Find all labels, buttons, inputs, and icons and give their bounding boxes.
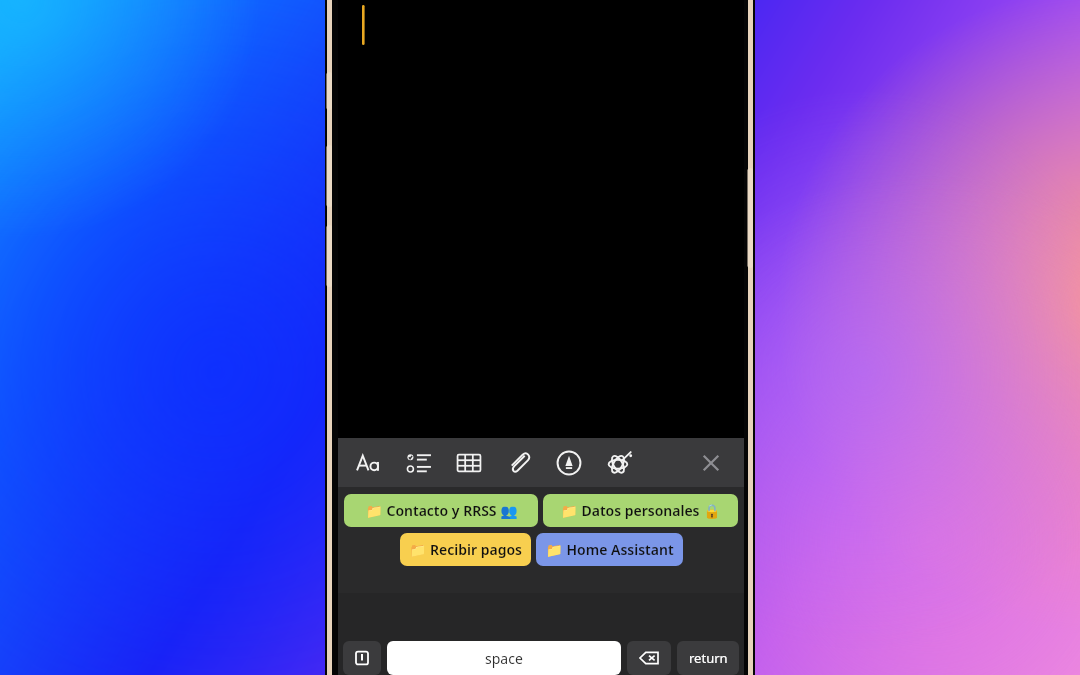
staticText: space: [485, 649, 523, 668]
button[interactable]: 📁 Contacto y RRSS 👥: [344, 494, 538, 527]
staticText: 📁 Contacto y RRSS 👥: [365, 501, 518, 520]
button[interactable]: space: [387, 641, 621, 675]
staticText: 📁 Recibir pagos: [409, 540, 522, 559]
button[interactable]: 📁 Home Assistant: [536, 533, 683, 566]
staticText: return: [689, 649, 728, 667]
button[interactable]: Checklist: [402, 446, 436, 480]
button[interactable]: Writing tools: [602, 446, 636, 480]
button[interactable]: Text format: [352, 446, 386, 480]
button[interactable]: Backspace: [627, 641, 671, 675]
button[interactable]: Attach: [502, 446, 536, 480]
button[interactable]: return: [677, 641, 739, 675]
staticText: 📁 Datos personales 🔒: [560, 501, 721, 520]
button[interactable]: Dictate: [343, 641, 381, 675]
button[interactable]: 📁 Recibir pagos: [400, 533, 531, 566]
button[interactable]: Markup: [552, 446, 586, 480]
button[interactable]: Table: [452, 446, 486, 480]
button[interactable]: 📁 Datos personales 🔒: [543, 494, 738, 527]
staticText: 📁 Home Assistant: [545, 540, 674, 559]
button[interactable]: Close: [694, 446, 728, 480]
